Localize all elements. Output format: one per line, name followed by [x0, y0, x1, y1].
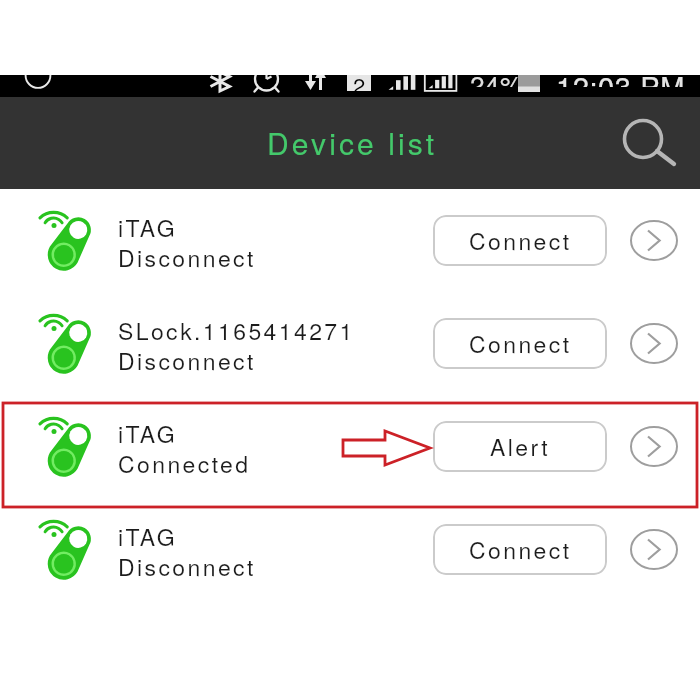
staticText: Connect	[469, 327, 572, 360]
button[interactable]: iTAG	[0, 189, 700, 292]
staticText: 12:03 PM	[556, 75, 685, 87]
button[interactable]: Connect	[433, 215, 607, 266]
staticText: iTAG	[118, 211, 178, 244]
staticText: 2	[353, 75, 366, 91]
staticText: Disconnect	[118, 344, 256, 377]
button[interactable]: iTAG	[0, 498, 700, 601]
staticText: iTAG	[118, 417, 178, 450]
button[interactable]: iTAG	[0, 395, 700, 498]
button[interactable]: Connect	[433, 524, 607, 575]
staticText: Disconnect	[118, 241, 256, 274]
staticText: Connect	[469, 224, 572, 257]
staticText: Device list	[267, 121, 438, 164]
staticText: Connect	[469, 533, 572, 566]
staticText: 24%	[470, 75, 524, 87]
button[interactable]: Alert	[433, 421, 607, 472]
staticText: SLock.1165414271	[118, 314, 355, 347]
staticText: iTAG	[118, 520, 178, 553]
button[interactable]: Details	[630, 323, 678, 364]
button[interactable]: SLock.1165414271	[0, 292, 700, 395]
staticText: Disconnect	[118, 550, 256, 583]
button[interactable]: Details	[630, 426, 678, 467]
staticText: Alert	[490, 430, 550, 463]
button[interactable]: Search	[612, 110, 678, 176]
button[interactable]: Details	[630, 529, 678, 570]
button[interactable]: Connect	[433, 318, 607, 369]
button[interactable]: Details	[630, 220, 678, 261]
staticText: Connected	[118, 447, 251, 480]
